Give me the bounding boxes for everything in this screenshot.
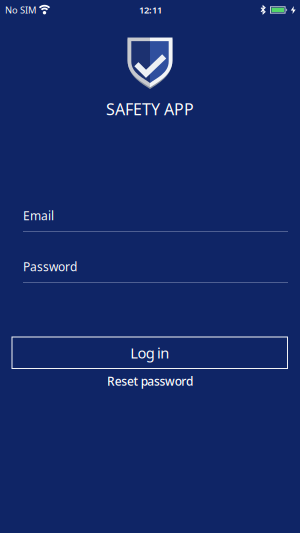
staticText: Password [23,258,77,274]
button[interactable]: Reset password [103,369,197,393]
staticText: SAFETY APP [106,98,194,120]
button[interactable]: Log in [12,337,287,368]
staticText: Reset password [107,373,193,389]
staticText: No SIM [5,4,36,16]
staticText: 12:11 [139,4,162,16]
button[interactable]: Password [23,258,288,283]
button[interactable]: Email [23,207,288,232]
staticText: Email [23,207,54,223]
staticText: Log in [130,343,169,362]
